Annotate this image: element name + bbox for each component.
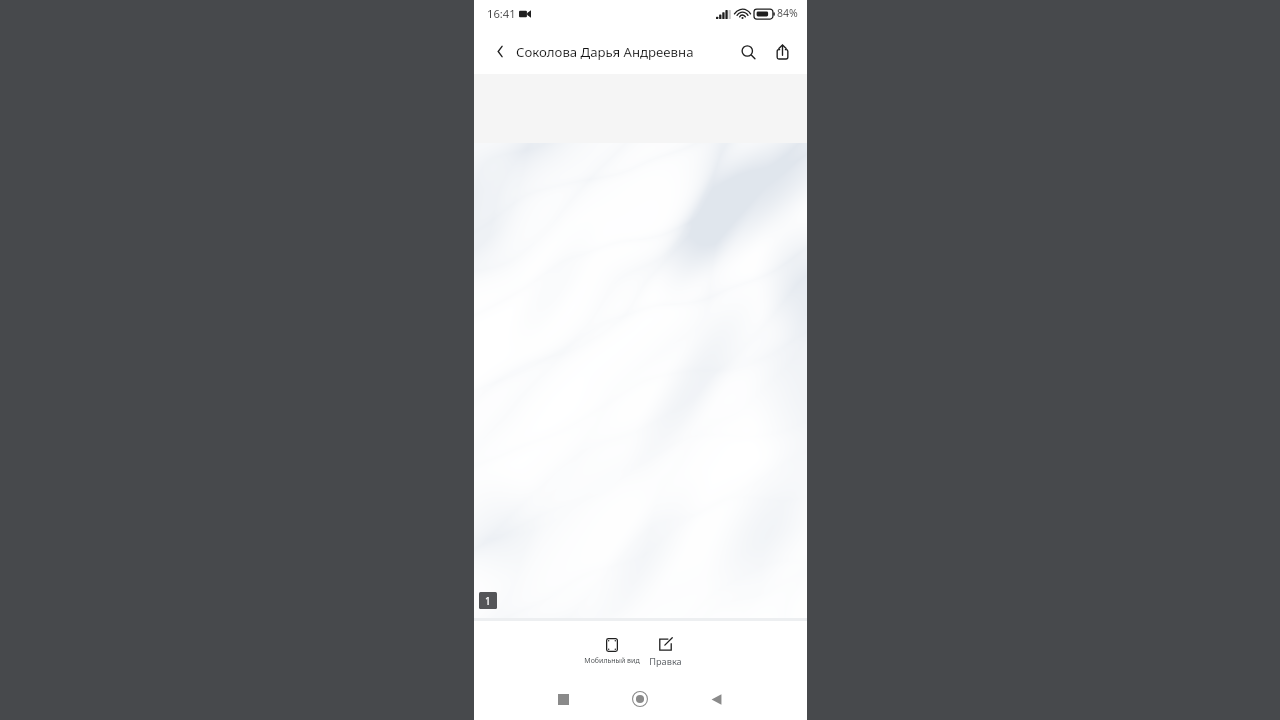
staticText: 1 <box>485 594 491 608</box>
staticText: 84% <box>777 6 798 20</box>
staticText: Мобильный вид <box>584 656 640 666</box>
button[interactable]: Back <box>486 37 514 65</box>
staticText: 16:41 <box>487 6 516 21</box>
button[interactable]: Share <box>768 38 796 66</box>
button[interactable]: Back <box>699 682 733 716</box>
button[interactable]: Search <box>734 38 762 66</box>
button[interactable]: Home <box>623 682 657 716</box>
button[interactable]: Мобильный вид <box>582 637 642 667</box>
button[interactable]: Document page 1 <box>474 143 807 621</box>
button[interactable]: Recent apps <box>546 682 580 716</box>
staticText: Соколова Дарья Андреевна <box>516 43 694 61</box>
staticText: Правка <box>649 655 682 668</box>
button[interactable]: Правка <box>647 637 684 669</box>
